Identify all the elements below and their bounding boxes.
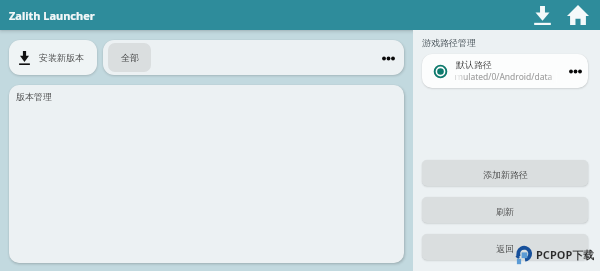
staticText: 游戏路径管理 <box>422 37 476 48</box>
staticText: mulated/0/Android/data <box>455 71 553 83</box>
button[interactable]: Path options <box>564 60 586 82</box>
button[interactable]: 安装新版本 <box>9 40 97 75</box>
button[interactable]: 返回 <box>422 234 588 260</box>
button[interactable]: 刷新 <box>422 197 588 223</box>
staticText: 全部 <box>121 52 139 63</box>
staticText: 返回 <box>496 243 514 254</box>
staticText: Zalith Launcher <box>9 8 95 23</box>
button[interactable]: Home <box>566 3 590 27</box>
staticText: PCPOP下载 <box>536 247 595 262</box>
staticText: 安装新版本 <box>39 52 84 63</box>
button[interactable]: 默认路径 <box>422 54 588 88</box>
button[interactable]: 添加新路径 <box>422 160 588 186</box>
button[interactable]: Download <box>530 3 554 27</box>
staticText: 默认路径 <box>456 59 492 70</box>
staticText: 添加新路径 <box>483 169 528 180</box>
button[interactable]: More options <box>375 45 401 71</box>
button[interactable]: 全部 <box>108 43 151 72</box>
staticText: 版本管理 <box>16 91 52 102</box>
staticText: 刷新 <box>496 206 514 217</box>
